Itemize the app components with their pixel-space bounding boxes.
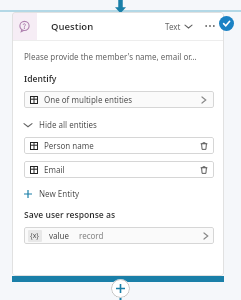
button[interactable]: Delete Person name bbox=[198, 140, 209, 151]
button[interactable]: Person name bbox=[24, 137, 214, 154]
staticText: Question bbox=[51, 20, 94, 33]
button[interactable]: Delete Email bbox=[198, 164, 209, 175]
staticText: One of multiple entities bbox=[44, 94, 133, 105]
staticText: value bbox=[49, 230, 70, 241]
button[interactable]: New Entity bbox=[24, 188, 80, 199]
staticText: Identify bbox=[24, 73, 57, 85]
button[interactable]: More options bbox=[202, 18, 218, 34]
staticText: record bbox=[79, 230, 104, 241]
staticText: Please provide the member's name, email … bbox=[24, 51, 197, 62]
staticText: New Entity bbox=[39, 188, 80, 199]
button[interactable]: Validated bbox=[219, 16, 234, 31]
staticText: {x} bbox=[30, 231, 40, 241]
button[interactable]: One of multiple entities bbox=[24, 91, 214, 108]
staticText: Hide all entities bbox=[39, 119, 97, 130]
staticText: Text bbox=[165, 21, 181, 32]
button[interactable]: Text bbox=[163, 17, 194, 36]
staticText: Email bbox=[44, 164, 65, 175]
button[interactable]: Hide all entities bbox=[24, 119, 214, 130]
staticText: Save user response as bbox=[24, 209, 116, 221]
staticText: Person name bbox=[44, 140, 94, 151]
button[interactable]: Add step bbox=[111, 279, 130, 298]
button[interactable]: {x} bbox=[24, 227, 214, 244]
button[interactable]: Email bbox=[24, 161, 214, 178]
